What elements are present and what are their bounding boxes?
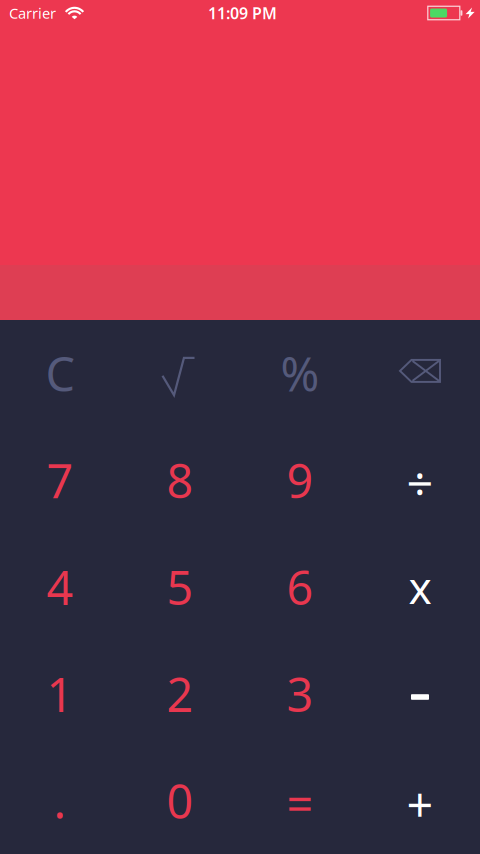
button[interactable]: Square root — [120, 320, 240, 427]
button[interactable]: % — [240, 320, 360, 427]
button[interactable]: x — [360, 534, 480, 640]
button[interactable]: 6 — [240, 534, 360, 640]
staticText: 2 — [166, 662, 193, 726]
staticText: 9 — [286, 448, 313, 512]
button[interactable]: = — [240, 747, 360, 854]
button[interactable]: 1 — [0, 640, 120, 747]
button[interactable]: C — [0, 320, 120, 427]
staticText: 6 — [286, 555, 313, 619]
staticText: 5 — [166, 555, 193, 619]
button[interactable]: 8 — [120, 427, 240, 534]
staticText: 0 — [166, 769, 193, 832]
staticText: 3 — [286, 662, 313, 726]
staticText: ÷ — [406, 451, 433, 515]
staticText: 11:09 PM — [208, 2, 277, 24]
staticText: = — [286, 771, 313, 834]
staticText: + — [406, 772, 433, 835]
staticText: 7 — [46, 448, 73, 512]
button[interactable]: 2 — [120, 640, 240, 747]
button[interactable]: ÷ — [360, 427, 480, 534]
button[interactable]: 4 — [0, 534, 120, 640]
button[interactable]: . — [0, 747, 120, 854]
button[interactable]: 0 — [120, 747, 240, 854]
button[interactable]: 3 — [240, 640, 360, 747]
staticText: % — [280, 342, 319, 405]
button[interactable]: Backspace — [360, 320, 480, 427]
staticText: Carrier — [9, 3, 56, 23]
button[interactable]: 9 — [240, 427, 360, 534]
staticText: 1 — [46, 662, 73, 726]
button[interactable]: 7 — [0, 427, 120, 534]
staticText: 4 — [46, 555, 73, 619]
button[interactable]: Minus — [360, 640, 480, 747]
staticText: . — [53, 769, 66, 832]
staticText: x — [408, 557, 431, 617]
button[interactable]: + — [360, 747, 480, 854]
staticText: 8 — [166, 448, 193, 512]
staticText: C — [45, 342, 74, 405]
button[interactable]: 5 — [120, 534, 240, 640]
